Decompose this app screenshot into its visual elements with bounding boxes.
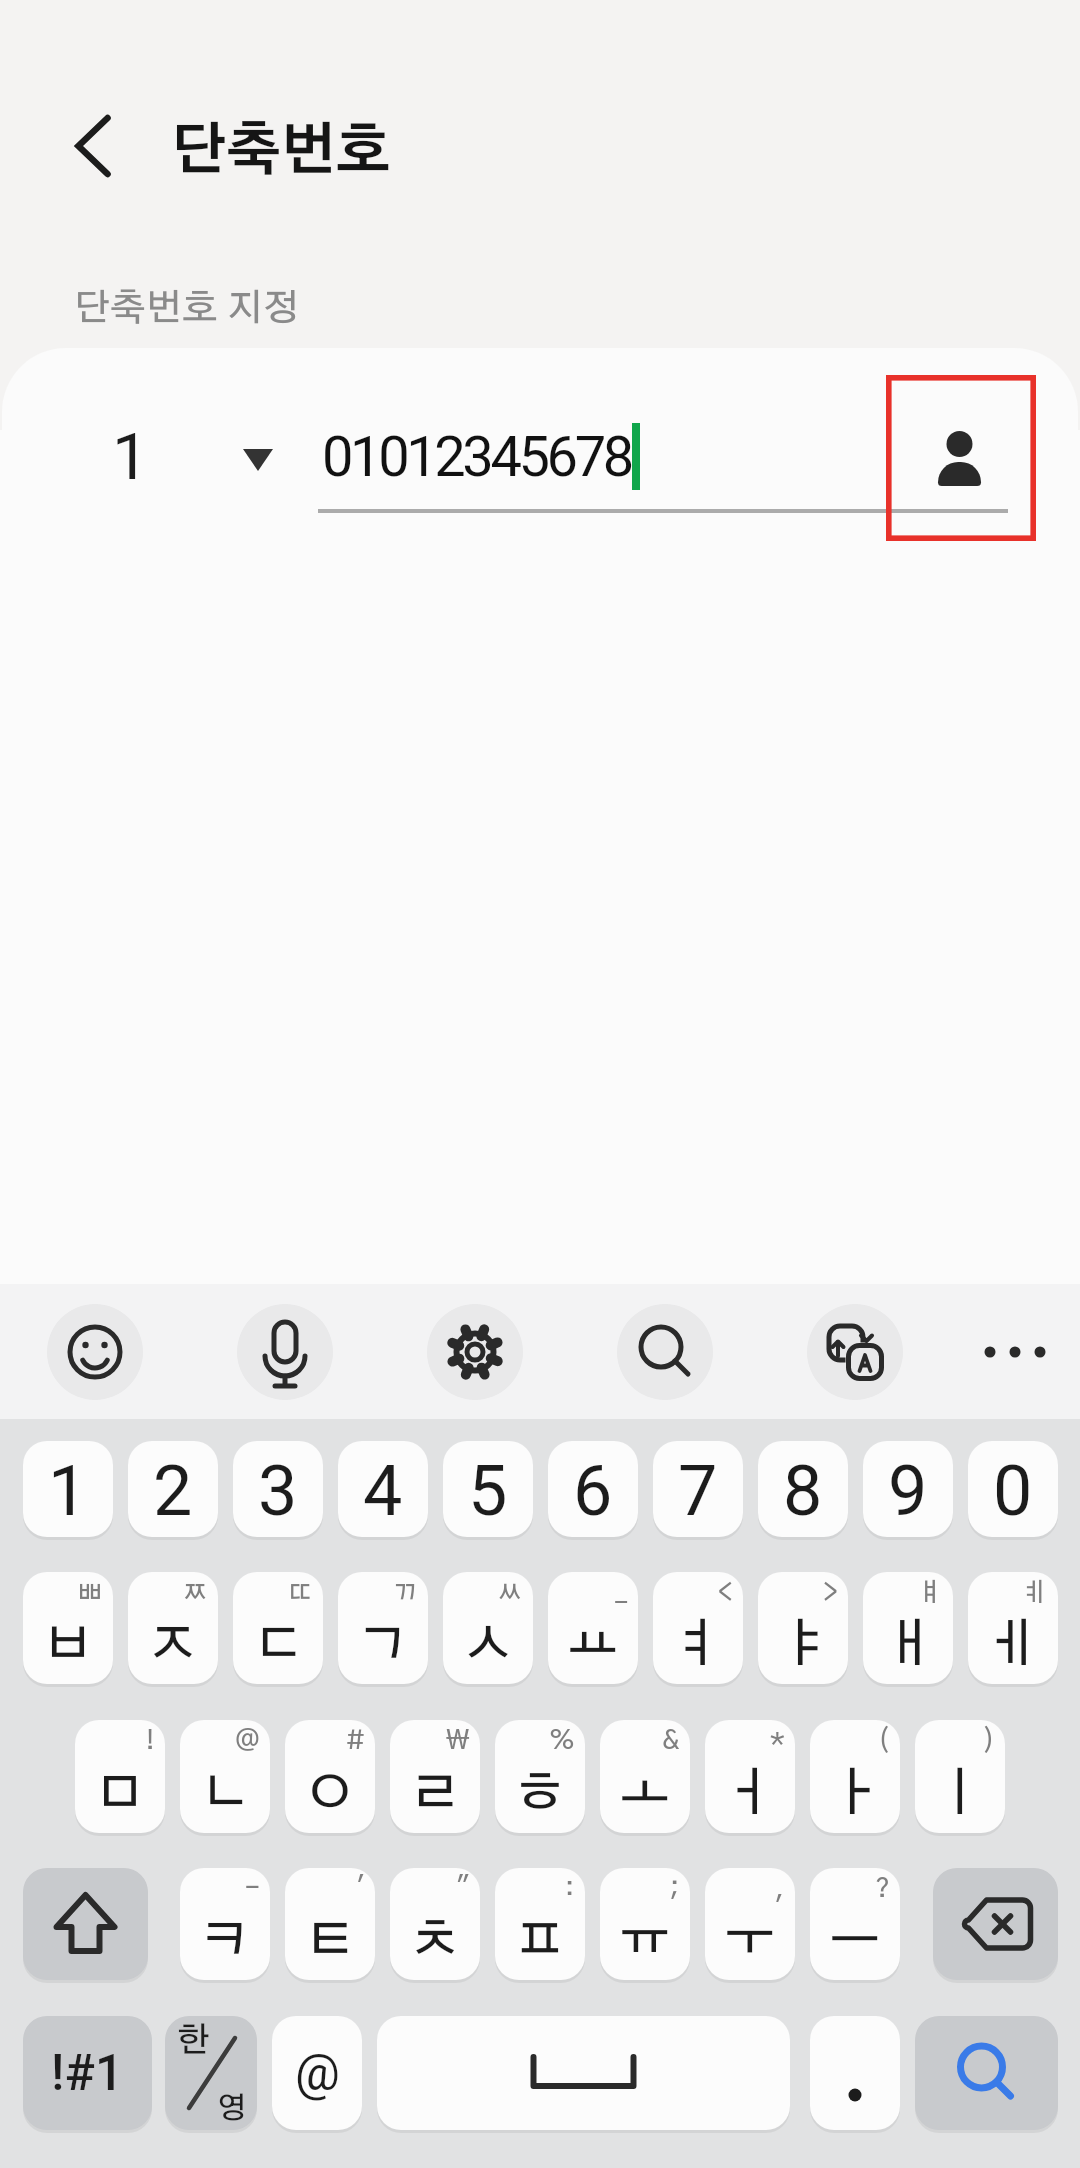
button[interactable]: ㅑ	[758, 1572, 848, 1684]
button[interactable]: 9	[863, 1441, 953, 1537]
button[interactable]: 0	[968, 1441, 1058, 1537]
button[interactable]	[617, 1304, 713, 1400]
staticText: 2	[153, 1450, 193, 1532]
button[interactable]: ㅕ	[653, 1572, 743, 1684]
staticText: @	[295, 2044, 340, 2103]
staticText: 단축번호	[171, 124, 391, 180]
button[interactable]	[810, 2016, 900, 2130]
staticText: ㄱ	[357, 1620, 409, 1672]
staticText: ㅡ	[829, 1916, 881, 1968]
button[interactable]	[427, 1304, 523, 1400]
staticText: 5	[468, 1450, 508, 1532]
button[interactable]: ㅈ	[128, 1572, 218, 1684]
staticText: 1	[48, 1450, 88, 1532]
staticText: %	[549, 1728, 575, 1754]
button[interactable]: !#1	[23, 2016, 152, 2130]
staticText: ㄹ	[409, 1769, 461, 1821]
button[interactable]: ㅋ	[180, 1868, 270, 1980]
staticText: ㅎ	[514, 1769, 566, 1821]
button[interactable]: ㄴ	[180, 1720, 270, 1833]
button[interactable]: 한	[165, 2016, 257, 2130]
button[interactable]: ㅓ	[705, 1720, 795, 1833]
button[interactable]: ㅍ	[495, 1868, 585, 1980]
staticText: 7	[678, 1450, 718, 1532]
button[interactable]: 3	[233, 1441, 323, 1537]
button[interactable]: 8	[758, 1441, 848, 1537]
staticText: ;	[670, 1876, 680, 1902]
button[interactable]: ㅇ	[285, 1720, 375, 1833]
button[interactable]: ㅣ	[915, 1720, 1005, 1833]
staticText: 6	[573, 1450, 613, 1532]
button[interactable]	[237, 1304, 333, 1400]
staticText: ㅑ	[777, 1620, 829, 1672]
button[interactable]: 5	[443, 1441, 533, 1537]
button[interactable]: ㄱ	[338, 1572, 428, 1684]
button[interactable]: 6	[548, 1441, 638, 1537]
staticText: 단축번호 지정	[74, 290, 299, 327]
staticText: !	[146, 1728, 155, 1754]
button[interactable]	[965, 1320, 1065, 1385]
staticText: ㅂ	[42, 1620, 94, 1672]
button[interactable]	[886, 375, 1036, 541]
button[interactable]: 1	[90, 419, 170, 491]
button[interactable]: ㄷ	[233, 1572, 323, 1684]
button[interactable]: ㅌ	[285, 1868, 375, 1980]
button[interactable]	[933, 1868, 1058, 1980]
staticText: !#1	[51, 2044, 124, 2103]
button[interactable]: ㅠ	[600, 1868, 690, 1980]
staticText: '	[356, 1876, 365, 1902]
button[interactable]: ㅔ	[968, 1572, 1058, 1684]
staticText: ㅌ	[304, 1916, 356, 1968]
button[interactable]	[377, 2016, 790, 2130]
button[interactable]	[23, 1868, 148, 1980]
button[interactable]: ㅁ	[75, 1720, 165, 1833]
button[interactable]	[915, 2016, 1058, 2130]
button[interactable]: @	[272, 2016, 362, 2130]
staticText: ㅆ	[497, 1580, 523, 1606]
staticText: :	[565, 1876, 575, 1902]
button[interactable]: ㅎ	[495, 1720, 585, 1833]
staticText: 3	[258, 1450, 298, 1532]
button[interactable]: 01012345678	[318, 418, 1010, 514]
button[interactable]: 1	[23, 1441, 113, 1537]
button[interactable]: ㅊ	[390, 1868, 480, 1980]
button[interactable]: ㅜ	[705, 1868, 795, 1980]
staticText: 0	[993, 1450, 1033, 1532]
staticText: (	[878, 1728, 890, 1754]
staticText: ㄴ	[199, 1769, 251, 1821]
button[interactable]	[58, 111, 128, 181]
staticText: ㅋ	[199, 1916, 251, 1968]
button[interactable]: ㅐ	[863, 1572, 953, 1684]
button[interactable]	[807, 1304, 903, 1400]
button[interactable]: ㅅ	[443, 1572, 533, 1684]
button[interactable]: 7	[653, 1441, 743, 1537]
staticText: ?	[875, 1876, 890, 1902]
staticText: ㄸ	[287, 1580, 313, 1606]
button[interactable]: ㅡ	[810, 1868, 900, 1980]
staticText: ㄷ	[252, 1620, 304, 1672]
staticText: ㅠ	[619, 1916, 671, 1968]
staticText: ,	[775, 1876, 785, 1902]
button[interactable]: ㅗ	[600, 1720, 690, 1833]
staticText: 8	[783, 1450, 823, 1532]
staticText: -	[245, 1876, 260, 1902]
staticText: 영	[217, 2094, 247, 2124]
staticText: ㅉ	[182, 1580, 208, 1606]
button[interactable]	[47, 1304, 143, 1400]
staticText: ㅛ	[567, 1620, 619, 1672]
staticText: ㅒ	[917, 1580, 943, 1606]
staticText: )	[983, 1728, 995, 1754]
staticText: _	[615, 1580, 628, 1606]
staticText: ㅍ	[514, 1916, 566, 1968]
button[interactable]: 4	[338, 1441, 428, 1537]
staticText: 1	[112, 419, 149, 491]
button[interactable]: ㄹ	[390, 1720, 480, 1833]
staticText: >	[823, 1580, 838, 1606]
button[interactable]: ㅂ	[23, 1572, 113, 1684]
staticText: "	[456, 1876, 470, 1902]
button[interactable]: ㅛ	[548, 1572, 638, 1684]
button[interactable]: ㅏ	[810, 1720, 900, 1833]
staticText: 한	[177, 2024, 211, 2058]
button[interactable]: 2	[128, 1441, 218, 1537]
staticText: *	[770, 1728, 785, 1754]
